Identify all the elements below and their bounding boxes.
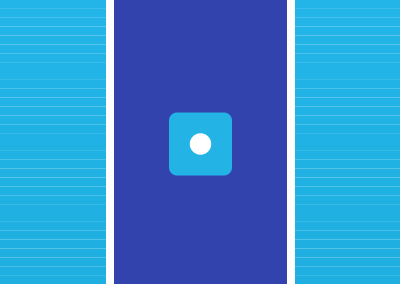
button[interactable]: Open app (169, 112, 232, 175)
